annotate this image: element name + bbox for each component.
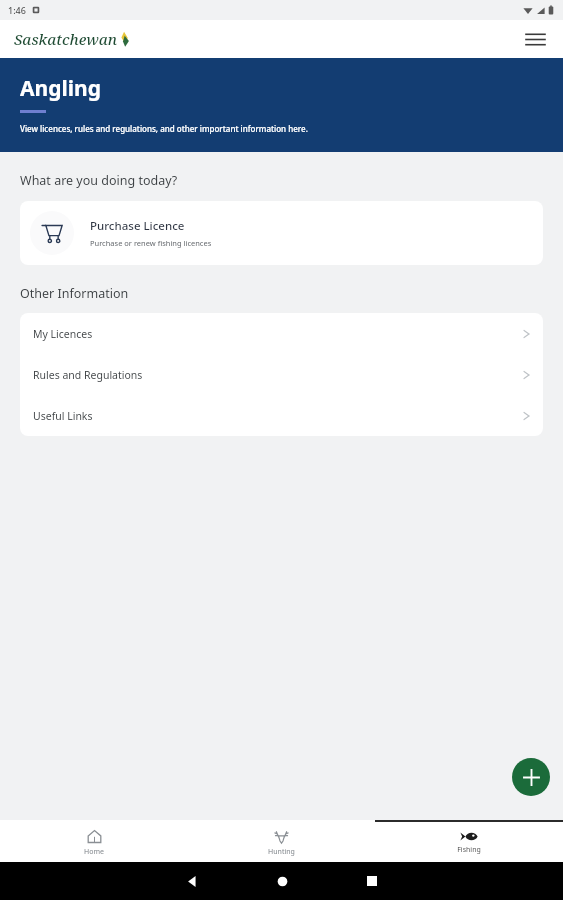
button[interactable]: Fishing	[375, 820, 563, 862]
staticText: 1:46	[8, 4, 26, 16]
button[interactable]: Useful Links	[20, 395, 543, 436]
staticText: Rules and Regulations	[33, 368, 523, 382]
staticText: Home	[84, 847, 104, 857]
staticText: My Licences	[33, 327, 523, 341]
staticText: Fishing	[457, 845, 481, 855]
button[interactable]: Menu	[519, 23, 551, 55]
staticText: Angling	[20, 74, 101, 103]
staticText: Saskatchewan	[14, 29, 118, 49]
button[interactable]: Add	[512, 758, 550, 796]
button[interactable]: My Licences	[20, 313, 543, 354]
button[interactable]: Hunting	[187, 820, 375, 862]
staticText: View licences, rules and regulations, an…	[20, 123, 308, 134]
staticText: Hunting	[268, 847, 295, 857]
staticText: Useful Links	[33, 409, 523, 423]
button[interactable]: Home	[0, 820, 187, 862]
staticText: Other Information	[20, 285, 129, 302]
button[interactable]: Rules and Regulations	[20, 354, 543, 395]
staticText: What are you doing today?	[20, 172, 178, 189]
staticText: Purchase or renew fishing licences	[90, 238, 212, 248]
button[interactable]: Purchase Licence	[20, 201, 543, 265]
staticText: Purchase Licence	[90, 218, 185, 234]
